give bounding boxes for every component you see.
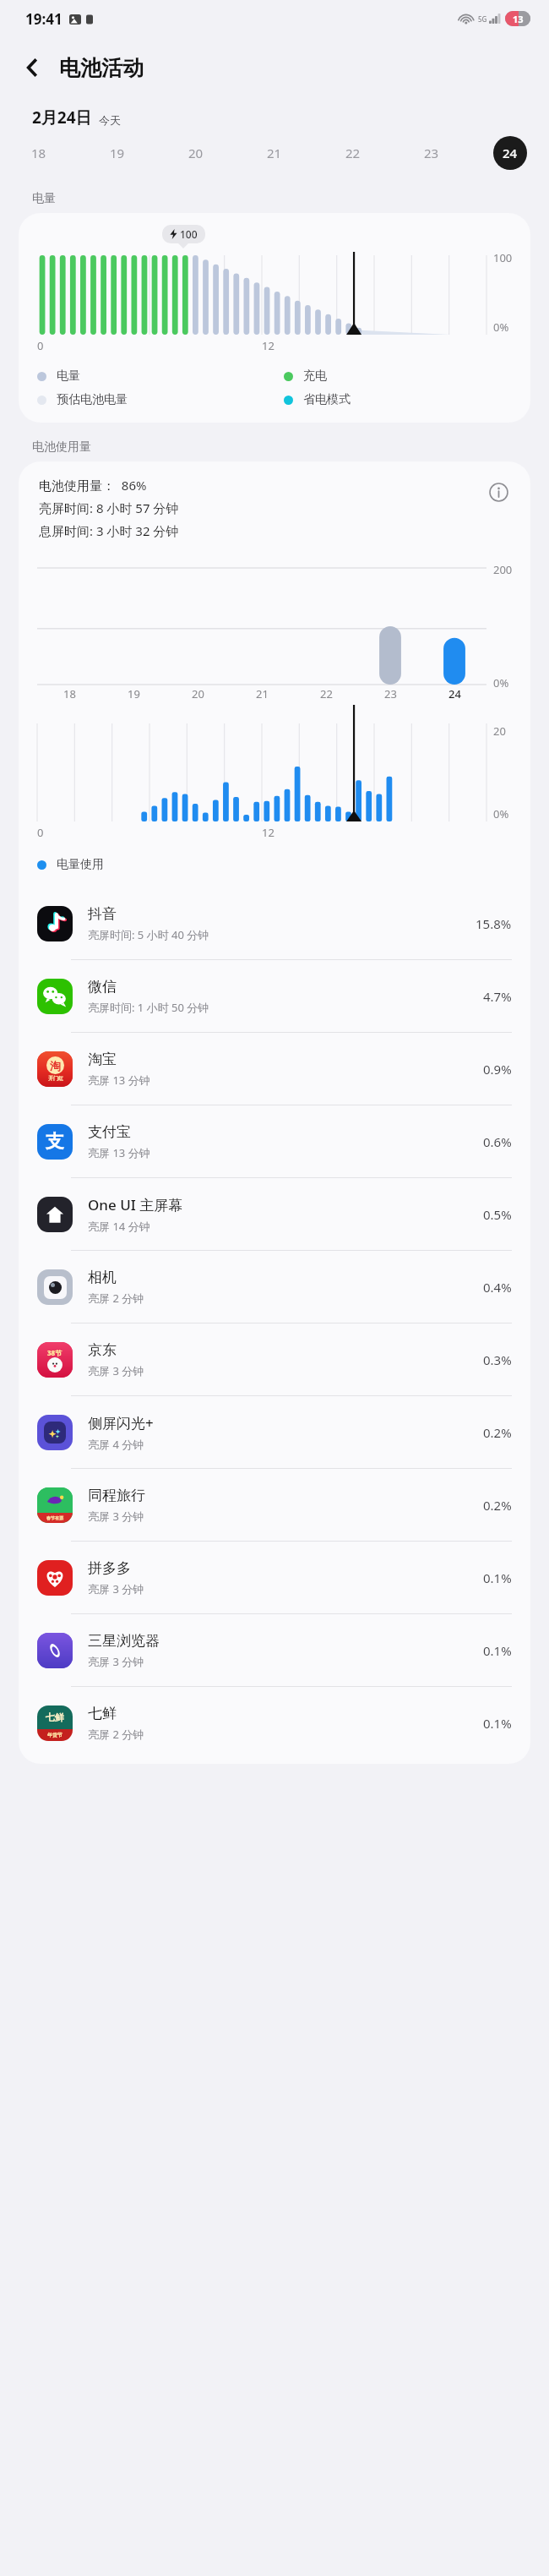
staticText: 18 [31, 145, 46, 161]
staticText: 0.1% [483, 1715, 512, 1732]
staticText: 亮屏 13 分钟 [88, 1072, 150, 1088]
staticText: 2月24日 [32, 106, 92, 128]
staticText: 12 [262, 825, 274, 840]
staticText: 20 [493, 723, 506, 739]
staticText: 0.3% [483, 1351, 512, 1368]
staticText: 19 [128, 686, 140, 701]
staticText: 电池活动 [59, 55, 144, 81]
staticText: 0% [493, 806, 509, 821]
staticText: 22 [345, 145, 361, 161]
staticText: 相机 [88, 1269, 117, 1286]
staticText: 电池使用量： 86% [39, 477, 147, 494]
staticText: 支 [46, 1130, 64, 1154]
button[interactable]: 23 [415, 136, 448, 170]
button[interactable]: 支 [19, 1105, 530, 1177]
staticText: 0.6% [483, 1133, 512, 1150]
staticText: 0.9% [483, 1061, 512, 1078]
staticText: 23 [424, 145, 439, 161]
staticText: 今天 [99, 113, 121, 127]
staticText: 电池使用量 [32, 439, 91, 455]
button[interactable]: 春节有票 [19, 1469, 530, 1541]
button[interactable]: Info [485, 478, 512, 505]
staticText: 亮屏 14 分钟 [88, 1219, 150, 1234]
staticText: 拼多多 [88, 1559, 131, 1577]
button[interactable]: 微信 [19, 960, 530, 1032]
staticText: 24 [448, 686, 461, 701]
button[interactable]: Back [12, 47, 52, 88]
staticText: 0 [37, 825, 44, 840]
button[interactable]: 拼多多 [19, 1542, 530, 1613]
staticText: One UI 主屏幕 [88, 1195, 183, 1214]
staticText: 200 [493, 562, 513, 577]
staticText: 年货节 [47, 1732, 63, 1738]
staticText: 100 [180, 227, 198, 241]
button[interactable]: 38节 [19, 1323, 530, 1395]
button[interactable]: 21 [258, 136, 291, 170]
staticText: 18 [63, 686, 76, 701]
staticText: 亮屏时间: 8 小时 57 分钟 [39, 499, 179, 516]
staticText: 12 [262, 338, 274, 353]
staticText: 13 [513, 13, 524, 25]
staticText: 同程旅行 [88, 1487, 145, 1504]
staticText: 电量使用 [57, 857, 104, 872]
button[interactable]: 七鲜 [19, 1687, 530, 1759]
staticText: 春节有票 [46, 1515, 63, 1520]
staticText: 七鲜 [46, 1711, 64, 1723]
staticText: 亮屏 13 分钟 [88, 1145, 150, 1160]
staticText: 4.7% [483, 988, 512, 1005]
staticText: 20 [192, 686, 204, 701]
staticText: 24 [503, 145, 518, 161]
button[interactable]: 20 [179, 136, 213, 170]
staticText: 23 [384, 686, 397, 701]
staticText: 0.2% [483, 1424, 512, 1441]
staticText: 亮屏 3 分钟 [88, 1581, 144, 1596]
staticText: 息屏时间: 3 小时 32 分钟 [39, 522, 179, 539]
staticText: 亮屏 4 分钟 [88, 1437, 144, 1452]
staticText: 亮屏 3 分钟 [88, 1509, 144, 1524]
staticText: 0% [493, 319, 509, 335]
button[interactable]: 侧屏闪光+ [19, 1396, 530, 1468]
staticText: 充电 [303, 368, 327, 384]
staticText: 亮屏 2 分钟 [88, 1727, 144, 1742]
staticText: 22 [320, 686, 333, 701]
staticText: 抖音 [88, 905, 117, 923]
staticText: 亮屏时间: 1 小时 50 分钟 [88, 1000, 209, 1015]
staticText: 省电模式 [303, 392, 351, 407]
staticText: 微信 [88, 978, 117, 996]
button[interactable]: 19 [101, 136, 134, 170]
button[interactable]: 三星浏览器 [19, 1614, 530, 1686]
button[interactable]: 18 [22, 136, 56, 170]
staticText: 亮屏 3 分钟 [88, 1654, 144, 1669]
button[interactable]: 22 [336, 136, 370, 170]
staticText: 20 [188, 145, 204, 161]
button[interactable]: 24 [493, 136, 527, 170]
button[interactable]: 抖音 [19, 887, 530, 959]
staticText: 电量 [32, 191, 56, 206]
staticText: 开门红 [48, 1075, 63, 1082]
button[interactable]: 100 [19, 213, 530, 423]
staticText: 三星浏览器 [88, 1632, 160, 1650]
staticText: 亮屏时间: 5 小时 40 分钟 [88, 927, 209, 942]
staticText: 电量 [57, 368, 80, 384]
staticText: 0.1% [483, 1569, 512, 1586]
button[interactable]: 淘 [19, 1033, 530, 1105]
staticText: 侧屏闪光+ [88, 1413, 154, 1433]
staticText: 预估电池电量 [57, 392, 128, 407]
staticText: 100 [493, 250, 513, 265]
staticText: 0.1% [483, 1642, 512, 1659]
button[interactable]: One UI 主屏幕 [19, 1178, 530, 1250]
staticText: 京东 [88, 1341, 117, 1359]
staticText: 19:41 [25, 9, 63, 29]
staticText: 21 [256, 686, 269, 701]
staticText: 淘 [50, 1059, 61, 1072]
staticText: 21 [267, 145, 282, 161]
staticText: 七鲜 [88, 1705, 117, 1722]
staticText: 0.4% [483, 1279, 512, 1296]
staticText: 支付宝 [88, 1123, 131, 1141]
staticText: 0 [37, 338, 44, 353]
staticText: 亮屏 3 分钟 [88, 1363, 144, 1378]
staticText: 0% [493, 675, 509, 690]
staticText: 15.8% [476, 915, 512, 932]
button[interactable]: 相机 [19, 1251, 530, 1323]
staticText: 38节 [47, 1348, 63, 1357]
